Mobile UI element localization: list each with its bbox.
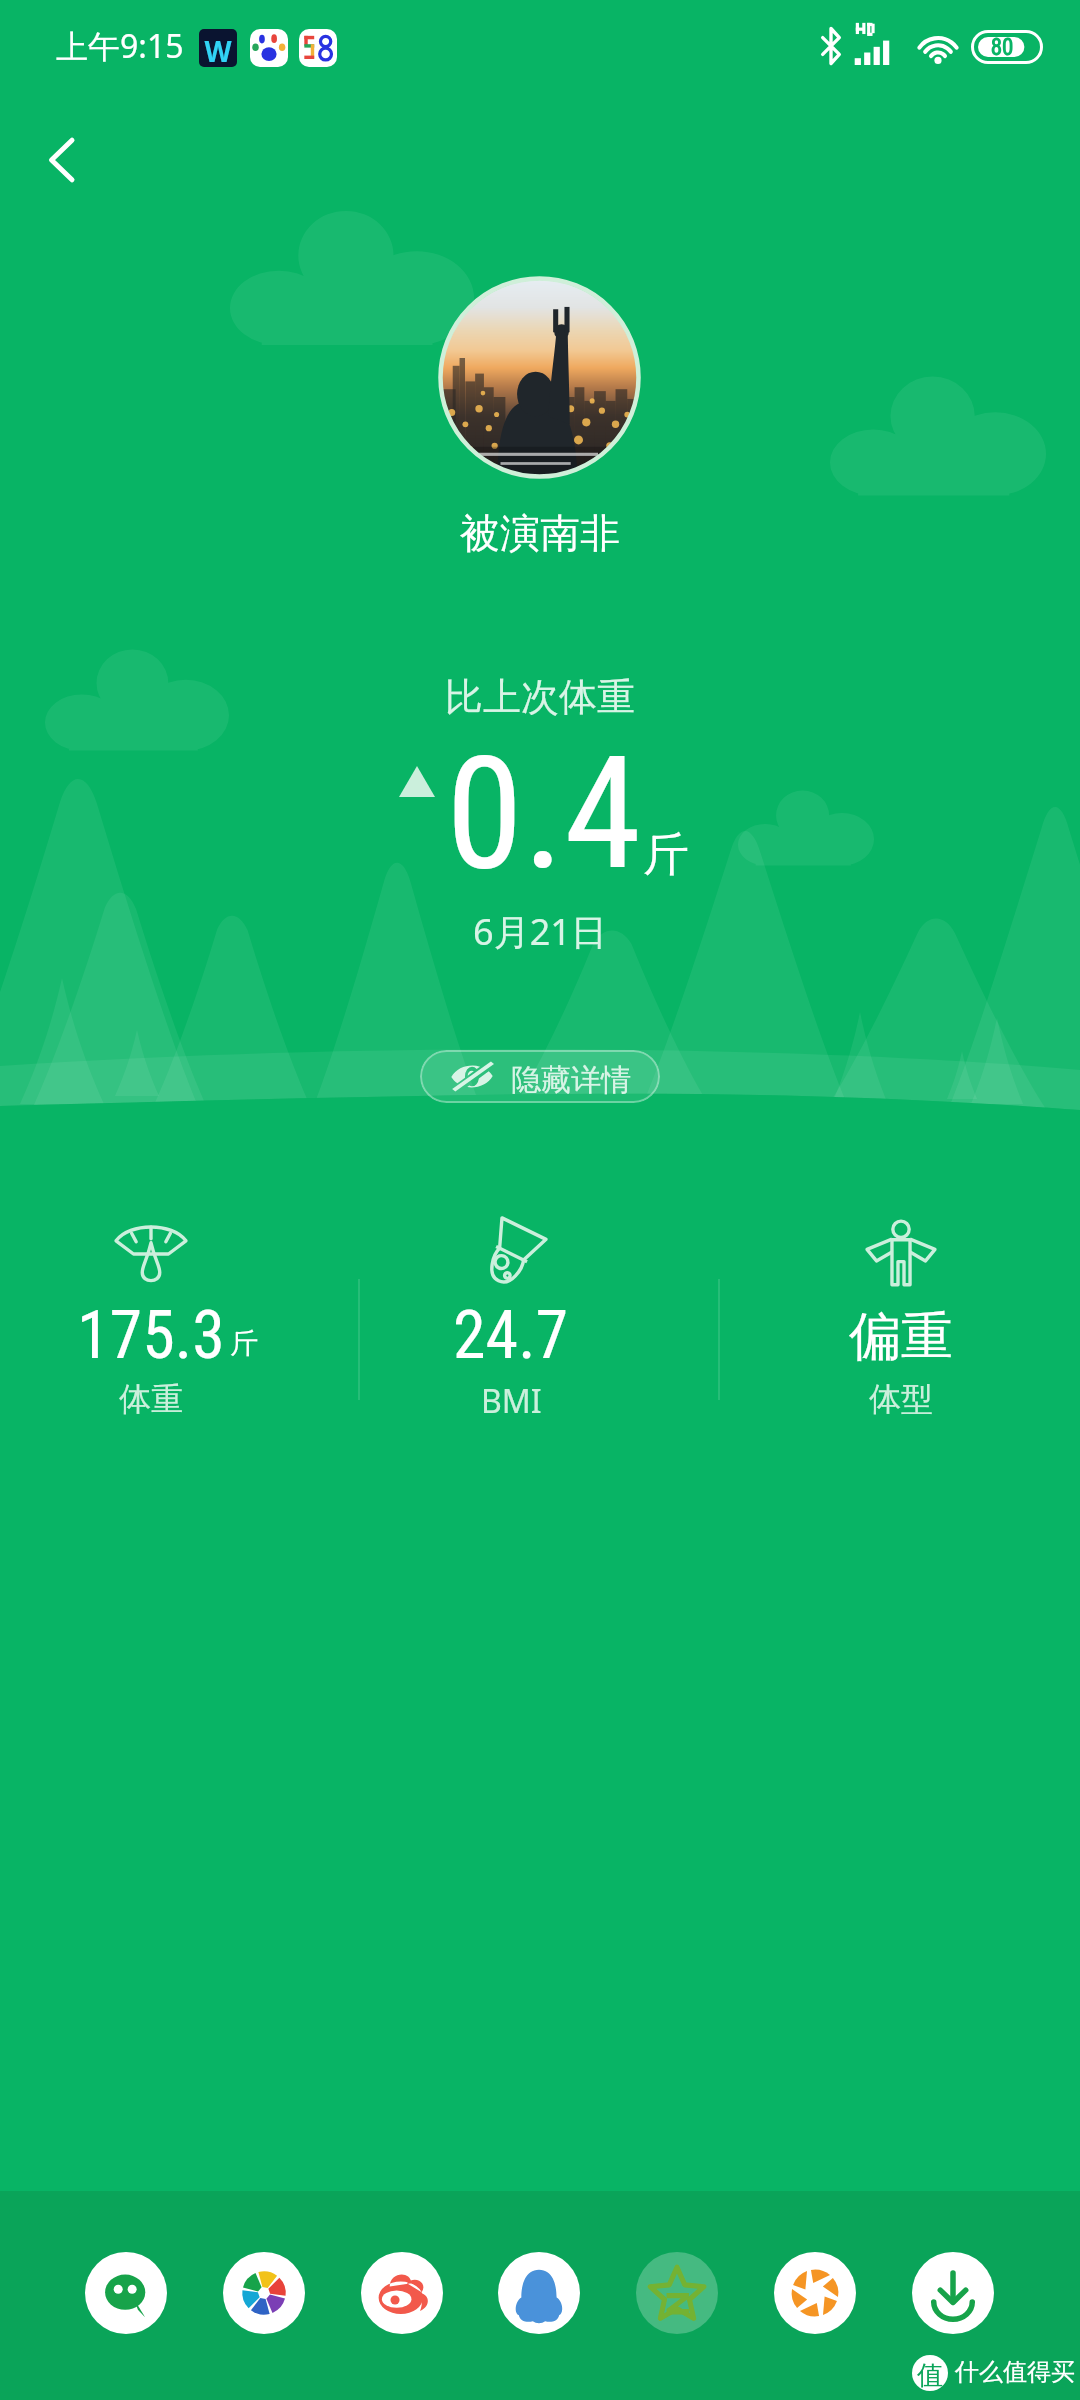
staticText: 上午9:15 xyxy=(56,24,184,68)
staticText: W xyxy=(199,32,237,67)
button[interactable]: QQ xyxy=(498,2252,580,2334)
staticText: 斤 xyxy=(643,826,689,884)
button[interactable]: Weibo xyxy=(361,2252,443,2334)
button[interactable]: QZone xyxy=(636,2252,718,2334)
button[interactable]: 隐藏详情 xyxy=(420,1050,660,1103)
staticText: 比上次体重 xyxy=(0,673,1080,721)
button[interactable]: Save xyxy=(912,2252,994,2334)
staticText: 被演南非 xyxy=(0,508,1080,558)
staticText: 80 xyxy=(966,34,1038,61)
button[interactable]: Camera xyxy=(774,2252,856,2334)
staticText: 体重 xyxy=(119,1379,183,1419)
button[interactable]: WeChat xyxy=(85,2252,167,2334)
staticText: 24.7 xyxy=(453,1297,569,1374)
button[interactable]: 175.3 xyxy=(1,1216,301,1431)
staticText: 斤 xyxy=(230,1326,258,1361)
button[interactable]: 偏重 xyxy=(751,1216,1051,1431)
staticText: BMI xyxy=(481,1379,542,1423)
staticText: 0.4 xyxy=(446,722,642,905)
button[interactable]: Back xyxy=(18,120,98,200)
staticText: 什么值得买 xyxy=(955,2357,1075,2387)
staticText: 175.3 xyxy=(77,1297,225,1374)
staticText: 隐藏详情 xyxy=(511,1061,631,1099)
button[interactable]: 24.7 xyxy=(361,1216,661,1431)
staticText: 值 xyxy=(912,2359,948,2391)
button[interactable]: Moments xyxy=(223,2252,305,2334)
staticText: 体型 xyxy=(869,1379,933,1419)
staticText: 偏重 xyxy=(849,1304,953,1370)
staticText: 6月21日 xyxy=(0,907,1080,956)
button[interactable]: Profile photo xyxy=(438,276,641,479)
